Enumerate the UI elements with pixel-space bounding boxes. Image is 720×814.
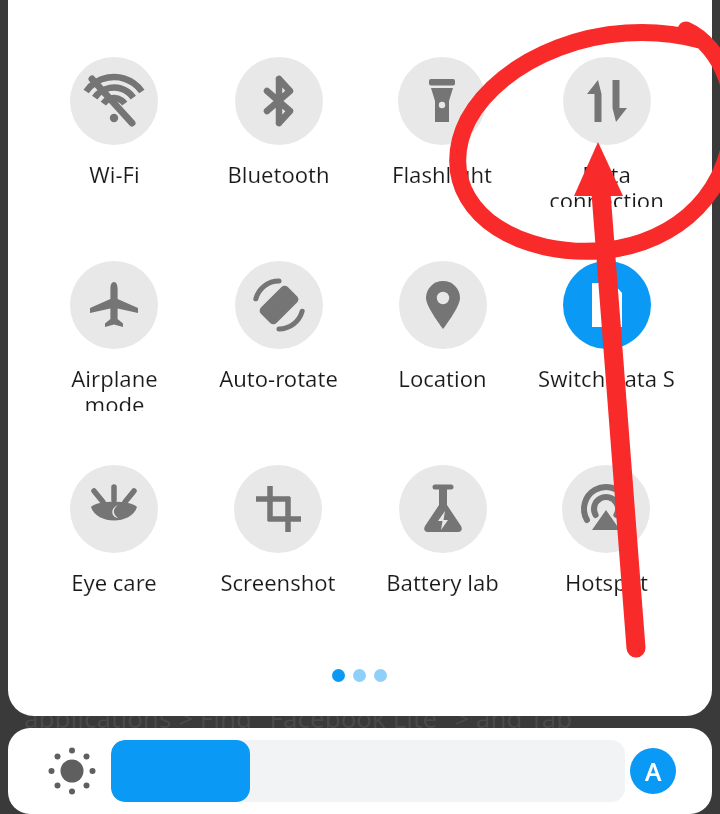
button[interactable]: Switch data S <box>524 261 688 411</box>
button[interactable]: Hotspot <box>524 465 688 615</box>
staticText: A <box>645 754 662 788</box>
staticText: Bluetooth <box>227 159 330 189</box>
button[interactable]: Wi-Fi <box>32 57 196 207</box>
button[interactable]: Auto-rotate <box>196 261 360 411</box>
staticText: Location <box>398 363 487 393</box>
button[interactable]: Battery lab <box>360 465 524 615</box>
staticText: Flashlight <box>392 159 492 189</box>
staticText: Hotspot <box>565 567 648 597</box>
button[interactable]: Screenshot <box>196 465 360 615</box>
staticText: Auto-rotate <box>219 363 338 393</box>
staticText: Data connection <box>549 159 664 207</box>
staticText: Wi-Fi <box>89 159 140 189</box>
staticText: Battery lab <box>386 567 499 597</box>
button[interactable]: Location <box>360 261 524 411</box>
staticText: Screenshot <box>220 567 336 597</box>
staticText: Eye care <box>71 567 157 597</box>
button[interactable]: Airplane mode <box>32 261 196 411</box>
button[interactable]: Eye care <box>32 465 196 615</box>
button[interactable]: Data connection <box>524 57 688 207</box>
staticText: Airplane mode <box>71 363 158 411</box>
button[interactable]: Brightness <box>38 737 106 805</box>
button[interactable]: Brightness slider <box>111 740 625 802</box>
button[interactable]: Auto brightness <box>630 748 676 794</box>
button[interactable]: Flashlight <box>360 57 524 207</box>
staticText: applications > Find "Facebook Lite" > an… <box>24 700 573 735</box>
button[interactable]: Bluetooth <box>196 57 360 207</box>
staticText: Switch data S <box>538 363 675 393</box>
